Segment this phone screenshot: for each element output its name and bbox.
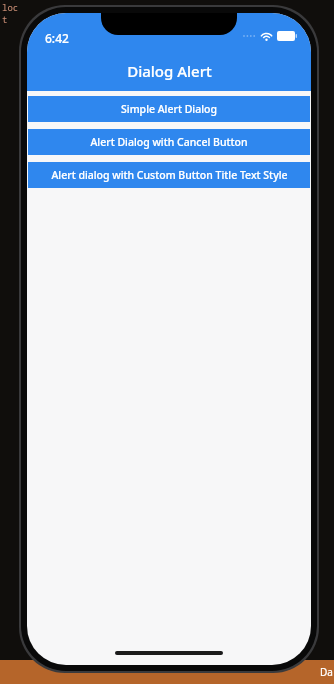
staticText: DEBUG bbox=[293, 13, 311, 32]
staticText: Dialog Alert bbox=[127, 61, 212, 81]
staticText: loc bbox=[2, 1, 19, 13]
button[interactable]: Alert Dialog with Cancel Button bbox=[28, 129, 310, 155]
button[interactable]: Simple Alert Dialog bbox=[28, 96, 310, 122]
button[interactable]: Alert dialog with Custom Button Title Te… bbox=[28, 162, 310, 188]
staticText: Alert dialog with Custom Button Title Te… bbox=[51, 168, 288, 182]
staticText: Alert Dialog with Cancel Button bbox=[90, 135, 248, 149]
staticText: Simple Alert Dialog bbox=[121, 102, 217, 116]
staticText: 6:42 bbox=[45, 30, 69, 46]
staticText: t bbox=[2, 13, 8, 25]
staticText: Da bbox=[320, 665, 333, 679]
